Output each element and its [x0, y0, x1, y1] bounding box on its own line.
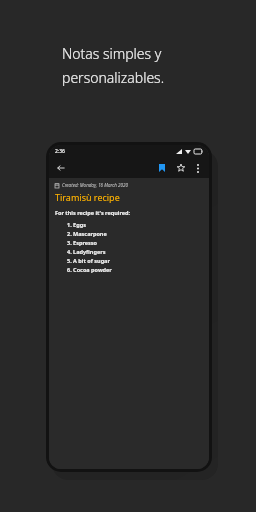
staticText: For this recipe it's required:: [55, 209, 131, 216]
staticText: personalizables.: [62, 68, 165, 87]
button[interactable]: More options: [192, 162, 204, 174]
staticText: 4. Ladyfingers: [67, 248, 106, 255]
button[interactable]: Favorite: [174, 161, 188, 175]
staticText: 3. Espresso: [67, 239, 98, 246]
staticText: Created: Monday, 16 March 2020: [62, 182, 129, 188]
button[interactable]: Back: [54, 161, 68, 175]
staticText: 2. Mascarpone: [67, 230, 107, 237]
staticText: 5. A bit of sugar: [67, 257, 110, 264]
staticText: 1. Eggs: [67, 221, 86, 228]
button[interactable]: Bookmark: [155, 161, 169, 175]
staticText: Tiramisù recipe: [55, 191, 120, 203]
staticText: 2:36: [55, 148, 65, 155]
staticText: 6. Cocoa powder: [67, 266, 112, 273]
staticText: Notas simples y: [62, 44, 162, 63]
